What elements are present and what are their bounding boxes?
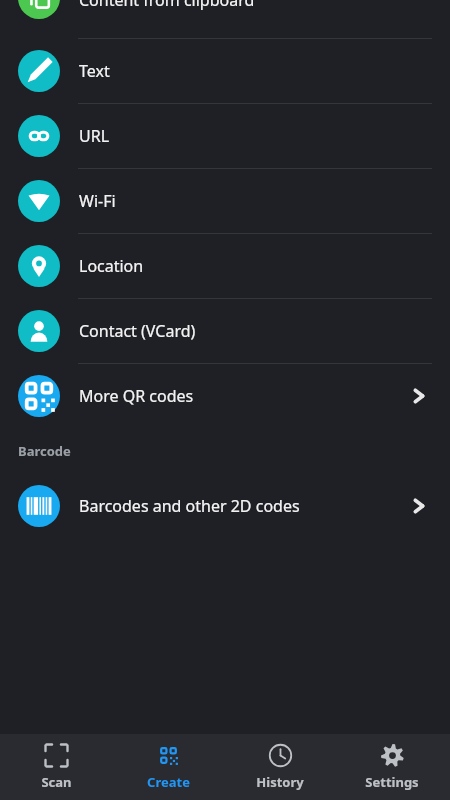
button[interactable]: Scan bbox=[0, 734, 112, 800]
button[interactable]: Content from clipboard bbox=[0, 0, 450, 28]
button[interactable]: More QR codes bbox=[0, 364, 450, 428]
button[interactable]: History bbox=[224, 734, 336, 800]
staticText: URL bbox=[79, 125, 110, 147]
staticText: Barcodes and other 2D codes bbox=[79, 495, 300, 517]
staticText: Settings bbox=[365, 773, 419, 791]
button[interactable]: URL bbox=[0, 104, 450, 168]
button[interactable]: Barcodes and other 2D codes bbox=[0, 474, 450, 538]
button[interactable]: Contact (VCard) bbox=[0, 299, 450, 363]
button[interactable]: Location bbox=[0, 234, 450, 298]
button[interactable]: Create bbox=[112, 734, 224, 800]
staticText: Create bbox=[147, 773, 190, 791]
staticText: Text bbox=[79, 60, 110, 82]
staticText: Contact (VCard) bbox=[79, 320, 196, 342]
button[interactable]: Settings bbox=[336, 734, 448, 800]
button[interactable]: Wi-Fi bbox=[0, 169, 450, 233]
staticText: More QR codes bbox=[79, 385, 194, 407]
staticText: History bbox=[256, 773, 304, 791]
staticText: Barcode bbox=[18, 442, 71, 460]
staticText: Location bbox=[79, 255, 144, 277]
staticText: Wi-Fi bbox=[79, 190, 116, 212]
staticText: Content from clipboard bbox=[79, 0, 255, 11]
button[interactable]: Text bbox=[0, 39, 450, 103]
staticText: Scan bbox=[41, 773, 72, 791]
